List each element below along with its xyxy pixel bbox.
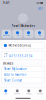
staticText: video xyxy=(26,35,30,36)
button[interactable]: Medvedev Group xyxy=(2,42,44,49)
staticText: Medvedev Group xyxy=(8,44,31,47)
staticText: Contacts xyxy=(26,93,32,95)
button[interactable]: Share Contact xyxy=(2,78,44,83)
button[interactable]: mobile xyxy=(2,51,44,59)
staticText: Share Contact xyxy=(4,79,22,82)
staticText: mail xyxy=(38,35,40,36)
staticText: Recents xyxy=(14,93,20,95)
staticText: 9:41 xyxy=(3,1,10,5)
staticText: Pavel Medvedev xyxy=(11,24,34,28)
button[interactable]: Contacts xyxy=(23,87,34,96)
staticText: Edit xyxy=(38,7,43,10)
button[interactable]: message xyxy=(1,30,11,38)
button[interactable]: call xyxy=(12,30,22,38)
staticText: Lists xyxy=(4,93,7,95)
button[interactable]: Share My Location xyxy=(2,66,44,72)
staticText: call xyxy=(16,35,18,36)
staticText: message xyxy=(3,35,10,36)
staticText: Devices xyxy=(3,62,13,65)
button[interactable]: Recents xyxy=(11,87,23,96)
button[interactable]: Edit xyxy=(38,7,43,10)
staticText: Keypad xyxy=(37,93,43,95)
staticText: +1 (415) 555-0134 xyxy=(4,54,33,58)
staticText: mobile xyxy=(4,52,8,54)
button[interactable]: video xyxy=(23,30,33,38)
button[interactable]: Add to Favorites xyxy=(2,72,44,77)
button[interactable]: Keypad xyxy=(34,87,46,96)
staticText: Add to Favorites xyxy=(4,73,26,76)
button[interactable]: mail xyxy=(34,30,45,38)
button[interactable]: Lists xyxy=(0,87,11,96)
staticText: Share My Location xyxy=(4,67,27,71)
